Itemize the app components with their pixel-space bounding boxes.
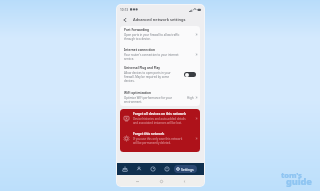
button[interactable]: Network xyxy=(118,163,132,175)
button[interactable]: Internet connection xyxy=(124,48,198,61)
button[interactable]: Home xyxy=(157,177,165,185)
staticText: Forget all devices on this network xyxy=(133,112,186,116)
button[interactable]: Support xyxy=(160,163,174,175)
staticText: High xyxy=(187,96,194,100)
staticText: If you use this only save this network w… xyxy=(133,137,183,145)
staticText: tom's xyxy=(281,170,302,180)
button[interactable]: Forget all devices on this network xyxy=(123,112,198,125)
button[interactable]: Back xyxy=(180,177,188,185)
staticText: Universal Plug and Play xyxy=(124,66,161,70)
staticText: WiFi optimization xyxy=(124,91,152,95)
button[interactable]: Back xyxy=(120,15,129,24)
staticText: Open ports in your firewall to allow tra… xyxy=(124,33,180,41)
staticText: Advanced network settings xyxy=(133,17,186,22)
staticText: guide xyxy=(286,175,312,188)
button[interactable]: Devices xyxy=(132,163,146,175)
staticText: Forget this network xyxy=(133,132,165,136)
button[interactable]: Settings xyxy=(174,165,197,173)
staticText: Port Forwarding xyxy=(124,28,150,32)
staticText: Internet connection xyxy=(124,48,155,52)
staticText: 10:13 xyxy=(120,8,129,12)
staticText: Allow devices to open ports in your fire… xyxy=(124,71,171,83)
button[interactable]: Universal Plug and Play xyxy=(124,66,198,83)
staticText: Your router's connection to your interne… xyxy=(124,53,179,61)
button[interactable]: Port Forwarding xyxy=(124,28,198,41)
button[interactable]: Speed test xyxy=(146,163,160,175)
staticText: Device histories and auto-added details … xyxy=(133,117,186,125)
button[interactable]: Forget this network xyxy=(123,132,198,145)
staticText: Settings xyxy=(181,167,194,171)
staticText: Optimize WiFi performance for your envir… xyxy=(124,96,172,104)
button[interactable]: Recents xyxy=(133,177,141,185)
button[interactable]: WiFi optimization xyxy=(124,91,198,104)
